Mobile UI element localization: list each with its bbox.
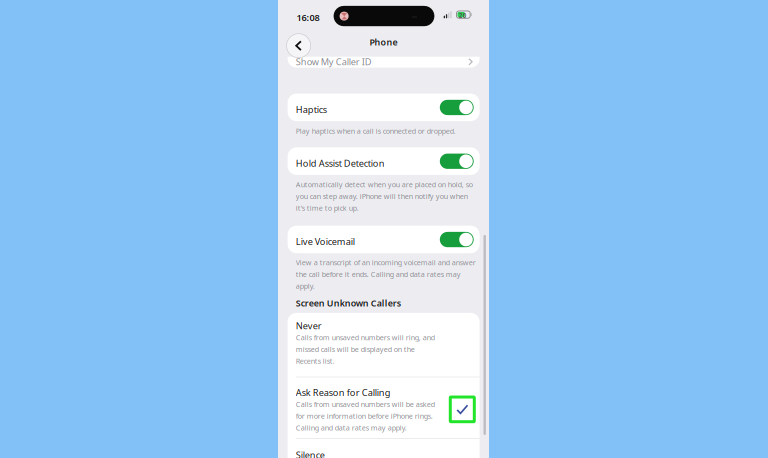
staticText: Haptics	[296, 103, 327, 116]
staticText: Calls from unsaved numbers will ring, an…	[296, 332, 435, 366]
button[interactable]: Silence	[288, 438, 480, 458]
button[interactable]: Never	[288, 313, 480, 377]
staticText: Live Voicemail	[296, 235, 355, 248]
button[interactable]: Back	[286, 33, 312, 59]
staticText: Ask Reason for Calling	[296, 386, 391, 399]
staticText: Automatically detect when you are placed…	[296, 179, 473, 213]
staticText: 20	[459, 11, 467, 20]
staticText: Hold Assist Detection	[296, 157, 385, 169]
staticText: Show My Caller ID	[296, 55, 372, 68]
staticText: Silence	[296, 449, 325, 458]
staticText: Phone	[369, 36, 397, 48]
button[interactable]: Live Voicemail	[288, 226, 480, 253]
staticText: Calls from unsaved numbers will be asked…	[296, 399, 435, 433]
button[interactable]: Hold Assist Detection	[288, 147, 480, 175]
staticText: Screen Unknown Callers	[296, 297, 401, 309]
staticText: View a transcript of an incoming voicema…	[296, 257, 476, 291]
button[interactable]: Show My Caller ID	[288, 40, 480, 68]
staticText: Play haptics when a call is connected or…	[296, 126, 456, 136]
staticText: Never	[296, 319, 322, 332]
button[interactable]: Haptics	[288, 94, 480, 121]
staticText: ·····	[412, 13, 417, 20]
button[interactable]: Ask Reason for Calling	[288, 377, 480, 438]
staticText: 16:08	[297, 11, 320, 24]
